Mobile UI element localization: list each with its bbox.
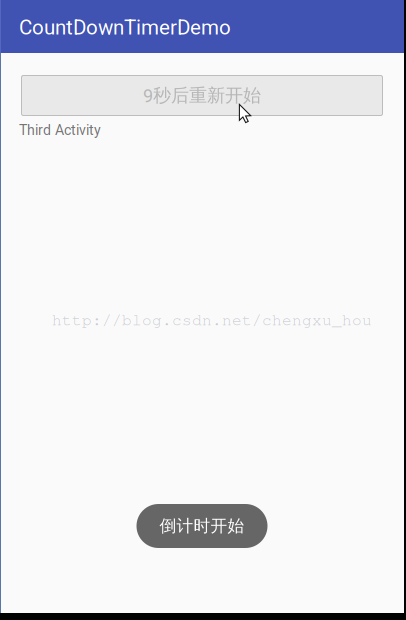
staticText: CountDownTimerDemo <box>19 15 231 40</box>
staticText: http://blog.csdn.net/chengxu_hou <box>52 310 372 329</box>
staticText: Third Activity <box>19 122 101 139</box>
staticText: 倒计时开始 <box>159 515 244 536</box>
button[interactable]: 倒计时开始 <box>136 504 267 548</box>
staticText: 9秒后重新开始 <box>143 84 261 107</box>
button[interactable]: 9秒后重新开始 <box>21 75 383 116</box>
